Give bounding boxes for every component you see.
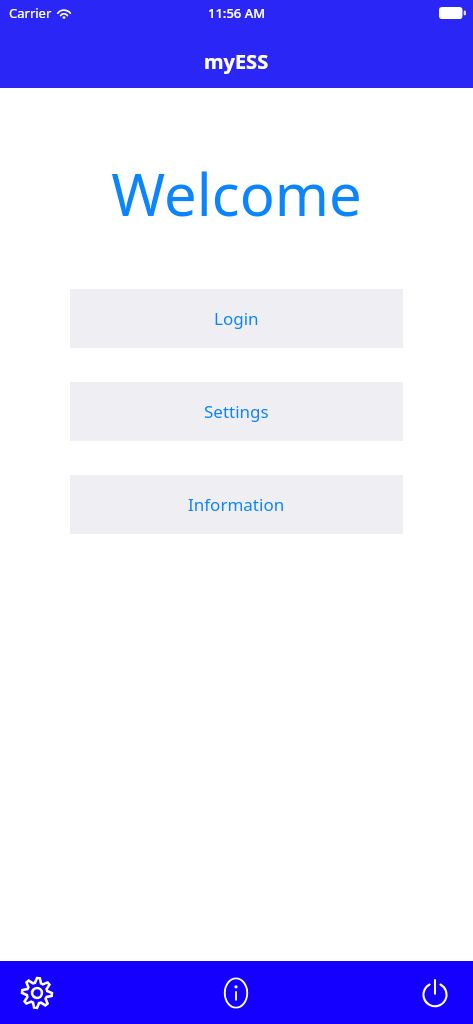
button[interactable]: Settings — [70, 382, 403, 441]
staticText: myESS — [204, 48, 269, 75]
staticText: Login — [214, 307, 259, 330]
button[interactable]: Login — [70, 289, 403, 348]
staticText: Information — [188, 493, 285, 516]
staticText: Carrier — [9, 4, 52, 22]
staticText: Settings — [204, 400, 269, 423]
button[interactable]: Information — [70, 475, 403, 534]
staticText: 11:56 AM — [208, 4, 266, 22]
button[interactable]: Settings — [0, 961, 157, 1024]
button[interactable]: Power off — [315, 961, 473, 1024]
button[interactable]: Information — [157, 961, 315, 1024]
staticText: Welcome — [0, 154, 473, 233]
